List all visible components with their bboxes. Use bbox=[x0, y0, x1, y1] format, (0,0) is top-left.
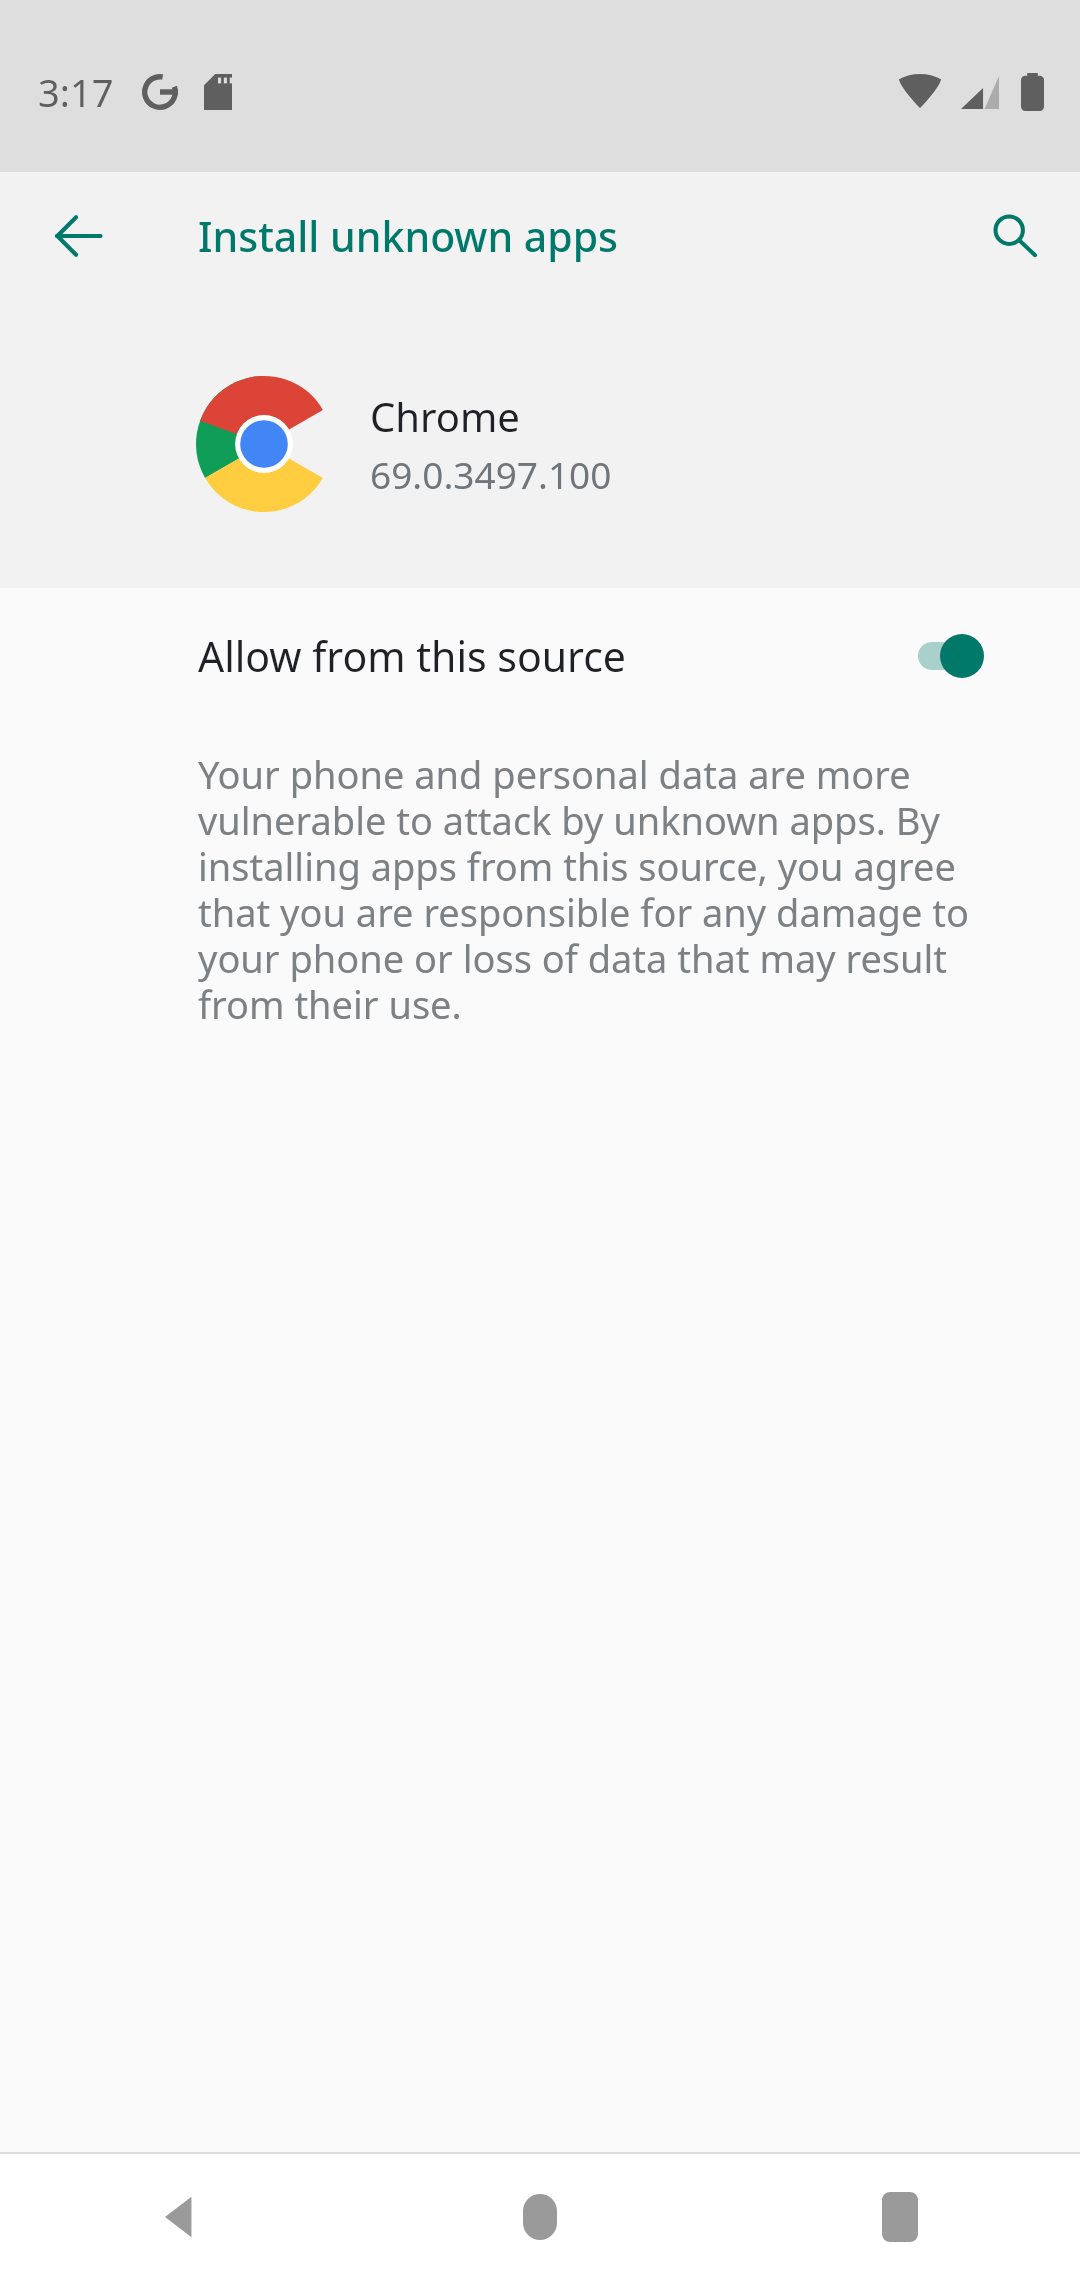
button[interactable]: Chrome bbox=[0, 300, 1080, 588]
staticText: Your phone and personal data are more vu… bbox=[198, 748, 1030, 1030]
staticText: Allow from this source bbox=[198, 628, 626, 684]
button[interactable]: Recent apps bbox=[720, 2154, 1080, 2280]
button[interactable]: Home bbox=[360, 2154, 720, 2280]
staticText: Install unknown apps bbox=[198, 208, 619, 264]
staticText: 69.0.3497.100 bbox=[370, 449, 612, 499]
button[interactable]: Navigate up bbox=[34, 192, 122, 280]
staticText: Chrome bbox=[370, 389, 520, 443]
button[interactable]: Search bbox=[970, 192, 1058, 280]
staticText: 3:17 bbox=[38, 66, 114, 118]
button[interactable]: Back bbox=[0, 2154, 360, 2280]
button[interactable]: Allow from this source bbox=[0, 588, 1080, 724]
